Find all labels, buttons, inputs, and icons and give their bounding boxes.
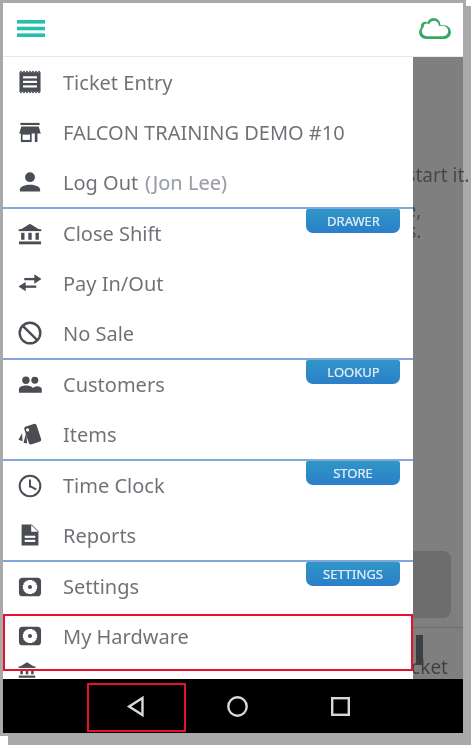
button[interactable]: Settings xyxy=(3,562,413,611)
staticText: No Sale xyxy=(63,320,135,347)
staticText: LOOKUP xyxy=(327,363,380,381)
button[interactable]: Cloud sync xyxy=(412,5,458,51)
staticText: New Ticket xyxy=(351,654,448,680)
button[interactable]: No Sale xyxy=(3,308,413,358)
staticText: Reports xyxy=(63,522,137,549)
staticText: Ticket Entry xyxy=(63,69,173,96)
staticText: Settings xyxy=(63,573,140,600)
staticText: My Hardware xyxy=(63,623,189,650)
staticText: DRAWER xyxy=(327,212,380,230)
staticText: Close Shift xyxy=(63,220,162,247)
staticText: FALCON TRAINING DEMO #10 xyxy=(63,119,345,146)
staticText: Customers xyxy=(63,371,165,398)
button[interactable]: Close Shift xyxy=(3,209,413,258)
button[interactable]: LOOKUP xyxy=(306,360,400,384)
staticText: Pick an action from the menu to start it… xyxy=(116,162,470,188)
button[interactable]: Time Clock xyxy=(3,461,413,510)
button[interactable]: Reports xyxy=(3,510,413,560)
button[interactable]: SETTINGS xyxy=(306,562,400,586)
button[interactable]: FALCON TRAINING DEMO #10 xyxy=(3,107,413,157)
staticText: Time Clock xyxy=(63,472,165,499)
staticText: (Jon Lee) xyxy=(145,169,227,196)
button[interactable]: Back xyxy=(87,679,186,733)
staticText: STORE xyxy=(333,464,373,482)
button[interactable]: About xyxy=(3,661,413,679)
staticText: Items xyxy=(63,421,117,448)
button[interactable]: Open navigation menu xyxy=(8,5,54,51)
button[interactable]: Pay In/Out xyxy=(3,258,413,308)
staticText: Log Out xyxy=(63,169,139,196)
button[interactable]: Log Out xyxy=(3,157,413,207)
button[interactable]: DRAWER xyxy=(306,209,400,233)
button[interactable]: Items xyxy=(3,409,413,459)
button[interactable]: Recent apps xyxy=(317,679,363,733)
staticText: Pay In/Out xyxy=(63,270,164,297)
button[interactable]: Open ticket xyxy=(199,551,451,618)
button[interactable]: Home xyxy=(214,679,260,733)
button[interactable]: My Hardware xyxy=(3,611,413,661)
staticText: Tap outside the drawer to leave, xyxy=(136,197,422,223)
button[interactable]: Customers xyxy=(3,360,413,409)
staticText: or swipe away entries. xyxy=(223,218,422,244)
staticText: SETTINGS xyxy=(323,565,383,583)
button[interactable]: STORE xyxy=(306,461,400,485)
button[interactable]: Ticket Entry xyxy=(3,57,413,107)
